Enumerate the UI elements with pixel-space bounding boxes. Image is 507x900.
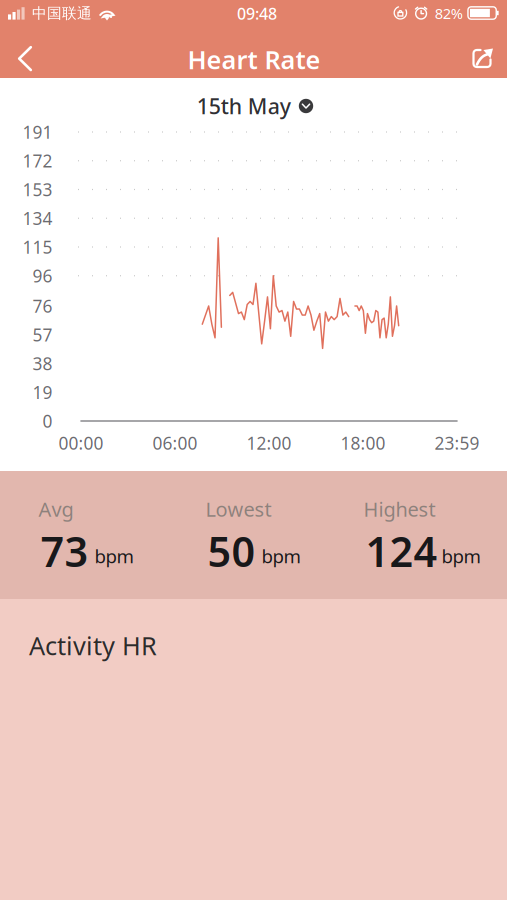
staticText: 134 <box>22 207 52 230</box>
staticText: 09:48 <box>237 3 277 24</box>
staticText: 中国联通 <box>32 4 92 22</box>
staticText: 0 <box>42 409 52 432</box>
button[interactable]: 15th May <box>191 88 319 124</box>
staticText: 96 <box>32 264 52 287</box>
staticText: 18:00 <box>340 431 385 454</box>
staticText: bpm <box>261 544 300 568</box>
staticText: Highest <box>363 496 435 522</box>
staticText: 76 <box>32 294 52 317</box>
staticText: 57 <box>32 323 52 346</box>
staticText: 172 <box>22 149 52 172</box>
staticText: 153 <box>22 178 52 201</box>
staticText: 73 <box>40 524 88 578</box>
staticText: 191 <box>22 120 52 143</box>
staticText: 00:00 <box>58 431 103 454</box>
staticText: Heart Rate <box>187 43 320 76</box>
staticText: 82% <box>435 3 463 23</box>
staticText: bpm <box>94 544 133 568</box>
staticText: 06:00 <box>152 431 197 454</box>
staticText: 12:00 <box>246 431 291 454</box>
staticText: Lowest <box>205 496 271 522</box>
staticText: 50 <box>207 524 255 578</box>
staticText: 23:59 <box>434 431 479 454</box>
staticText: 124 <box>365 524 437 578</box>
button[interactable]: Share <box>461 37 503 81</box>
staticText: 115 <box>22 235 52 258</box>
staticText: bpm <box>441 544 480 568</box>
staticText: Avg <box>38 496 73 522</box>
staticText: 38 <box>32 352 52 375</box>
staticText: 19 <box>32 381 52 404</box>
staticText: 15th May <box>197 92 291 120</box>
staticText: Activity HR <box>29 629 157 662</box>
button[interactable]: Back <box>4 37 46 81</box>
